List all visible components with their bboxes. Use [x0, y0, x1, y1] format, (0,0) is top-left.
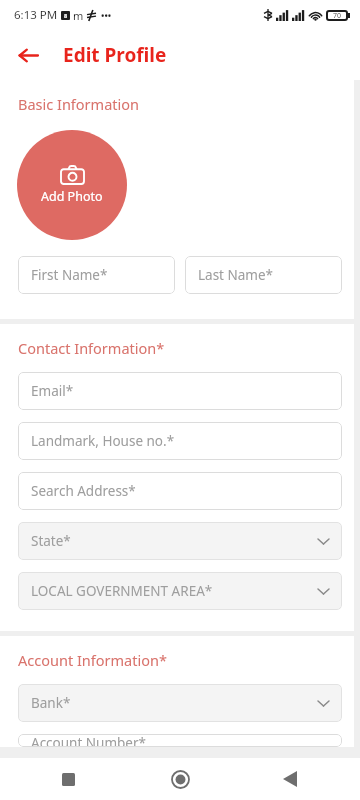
staticText: m: [73, 8, 84, 23]
staticText: State*: [31, 532, 71, 550]
button[interactable]: Back: [8, 35, 48, 75]
staticText: Contact Information*: [18, 338, 165, 358]
staticText: 6:13 PM: [14, 7, 58, 23]
staticText: •••: [101, 9, 112, 21]
staticText: 8: [64, 12, 68, 19]
staticText: 70: [333, 11, 342, 21]
staticText: Add Photo: [41, 188, 103, 205]
staticText: LOCAL GOVERNMENT AREA*: [31, 582, 213, 600]
button[interactable]: Search Address*: [18, 472, 342, 510]
staticText: Account Information*: [18, 650, 167, 670]
staticText: Landmark, House no.*: [31, 432, 175, 450]
button[interactable]: First Name*: [18, 256, 175, 294]
staticText: Account Number*: [31, 734, 146, 747]
staticText: Search Address*: [31, 482, 136, 500]
staticText: Basic Information: [18, 94, 140, 114]
button[interactable]: State*: [18, 522, 342, 560]
staticText: First Name*: [31, 266, 108, 284]
button[interactable]: Home: [120, 758, 240, 800]
button[interactable]: Landmark, House no.*: [18, 422, 342, 460]
button[interactable]: Account Number*: [18, 734, 342, 747]
button[interactable]: Add Photo: [17, 130, 127, 240]
button[interactable]: Recents: [0, 758, 120, 800]
staticText: Bank*: [31, 694, 71, 712]
button[interactable]: LOCAL GOVERNMENT AREA*: [18, 572, 342, 610]
staticText: Last Name*: [198, 266, 274, 284]
button[interactable]: Bank*: [18, 684, 342, 722]
staticText: Edit Profile: [63, 42, 167, 68]
button[interactable]: Back: [240, 758, 360, 800]
staticText: Email*: [31, 382, 74, 400]
button[interactable]: Email*: [18, 372, 342, 410]
button[interactable]: Last Name*: [185, 256, 342, 294]
